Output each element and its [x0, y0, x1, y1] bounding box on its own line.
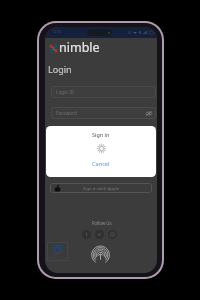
staticText: Login ID	[56, 89, 75, 95]
staticText: nimble	[59, 39, 100, 56]
staticText: Sign in with Apple	[83, 185, 120, 191]
button[interactable]: Instagram	[108, 230, 117, 239]
button[interactable]: Login ID	[51, 86, 156, 98]
staticText: Login	[48, 63, 72, 75]
button[interactable]: Sign in with Apple	[50, 183, 152, 193]
staticText: Password	[56, 110, 77, 116]
button[interactable]: Twitter	[95, 230, 104, 239]
staticText: 12:15	[53, 30, 62, 34]
staticText: Cancel	[92, 160, 110, 168]
button[interactable]: Password	[51, 107, 156, 119]
staticText: Sign in	[92, 131, 110, 138]
button[interactable]: Cancel	[82, 159, 120, 169]
button[interactable]: Facebook	[82, 230, 91, 239]
button[interactable]: Privacy - Terms	[47, 242, 68, 261]
staticText: Follow Us	[92, 220, 112, 226]
button[interactable]: Fingerprint login	[91, 246, 110, 265]
